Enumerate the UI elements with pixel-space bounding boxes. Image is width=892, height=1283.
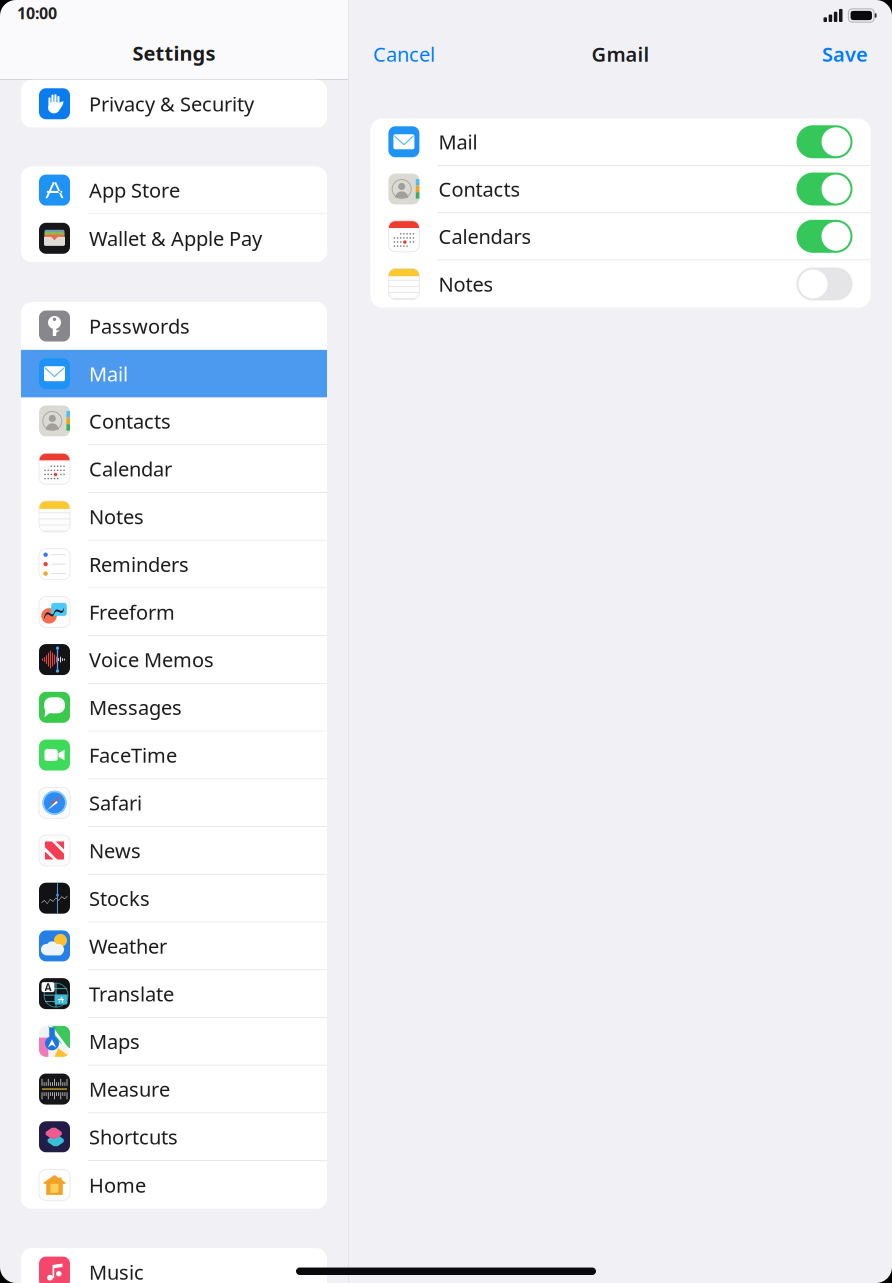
- staticText: Mail: [438, 128, 477, 155]
- staticText: News: [89, 837, 141, 864]
- button[interactable]: Music: [21, 1248, 327, 1283]
- staticText: Voice Memos: [89, 646, 214, 673]
- staticText: Calendar: [89, 455, 172, 482]
- staticText: Notes: [438, 271, 493, 297]
- button[interactable]: Calendar: [21, 445, 327, 493]
- button[interactable]: Messages: [21, 684, 327, 732]
- staticText: Maps: [89, 1028, 140, 1055]
- staticText: Save: [822, 41, 868, 67]
- staticText: Measure: [89, 1076, 170, 1102]
- button[interactable]: Notes: [796, 267, 852, 300]
- button[interactable]: Notes: [21, 493, 327, 541]
- button[interactable]: Cancel: [363, 34, 445, 74]
- staticText: Stocks: [89, 885, 150, 911]
- button[interactable]: Contacts: [796, 172, 852, 205]
- staticText: Translate: [89, 980, 174, 1007]
- button[interactable]: News: [21, 827, 327, 875]
- staticText: A: [44, 980, 51, 994]
- button[interactable]: Wallet & Apple Pay: [21, 214, 327, 262]
- staticText: Gmail: [591, 41, 649, 67]
- button[interactable]: Maps: [21, 1018, 327, 1066]
- button[interactable]: Measure: [21, 1066, 327, 1113]
- button[interactable]: Freeform: [21, 588, 327, 636]
- staticText: Shortcuts: [89, 1123, 178, 1150]
- staticText: Passwords: [89, 313, 190, 339]
- staticText: Cancel: [373, 41, 435, 67]
- button[interactable]: Mail: [21, 350, 327, 398]
- staticText: Settings: [132, 40, 215, 66]
- staticText: Notes: [89, 503, 144, 530]
- button[interactable]: Contacts: [21, 398, 327, 445]
- button[interactable]: FaceTime: [21, 732, 327, 779]
- button[interactable]: Passwords: [21, 302, 327, 350]
- staticText: Mail: [89, 360, 128, 387]
- staticText: Privacy & Security: [89, 90, 254, 117]
- button[interactable]: Mail: [796, 125, 852, 158]
- staticText: Messages: [89, 694, 182, 721]
- staticText: Freeform: [89, 599, 175, 625]
- staticText: App Store: [89, 177, 180, 203]
- button[interactable]: Shortcuts: [21, 1113, 327, 1161]
- staticText: Contacts: [438, 176, 520, 202]
- button[interactable]: Voice Memos: [21, 636, 327, 684]
- staticText: Safari: [89, 789, 142, 816]
- staticText: Wallet & Apple Pay: [89, 225, 262, 252]
- button[interactable]: Stocks: [21, 875, 327, 922]
- staticText: 10:00: [17, 2, 57, 24]
- button[interactable]: Weather: [21, 922, 327, 970]
- button[interactable]: Save: [812, 34, 878, 74]
- staticText: Home: [89, 1172, 146, 1198]
- staticText: Music: [89, 1259, 144, 1283]
- staticText: Contacts: [89, 408, 171, 434]
- button[interactable]: App Store: [21, 167, 327, 214]
- button[interactable]: Privacy & Security: [21, 80, 327, 128]
- staticText: Calendars: [438, 223, 531, 250]
- button[interactable]: Reminders: [21, 541, 327, 588]
- button[interactable]: A: [21, 970, 327, 1018]
- staticText: Reminders: [89, 551, 189, 577]
- staticText: Weather: [89, 933, 167, 959]
- staticText: FaceTime: [89, 742, 177, 768]
- button[interactable]: Calendars: [796, 220, 852, 253]
- button[interactable]: Safari: [21, 779, 327, 827]
- button[interactable]: Home: [21, 1161, 327, 1209]
